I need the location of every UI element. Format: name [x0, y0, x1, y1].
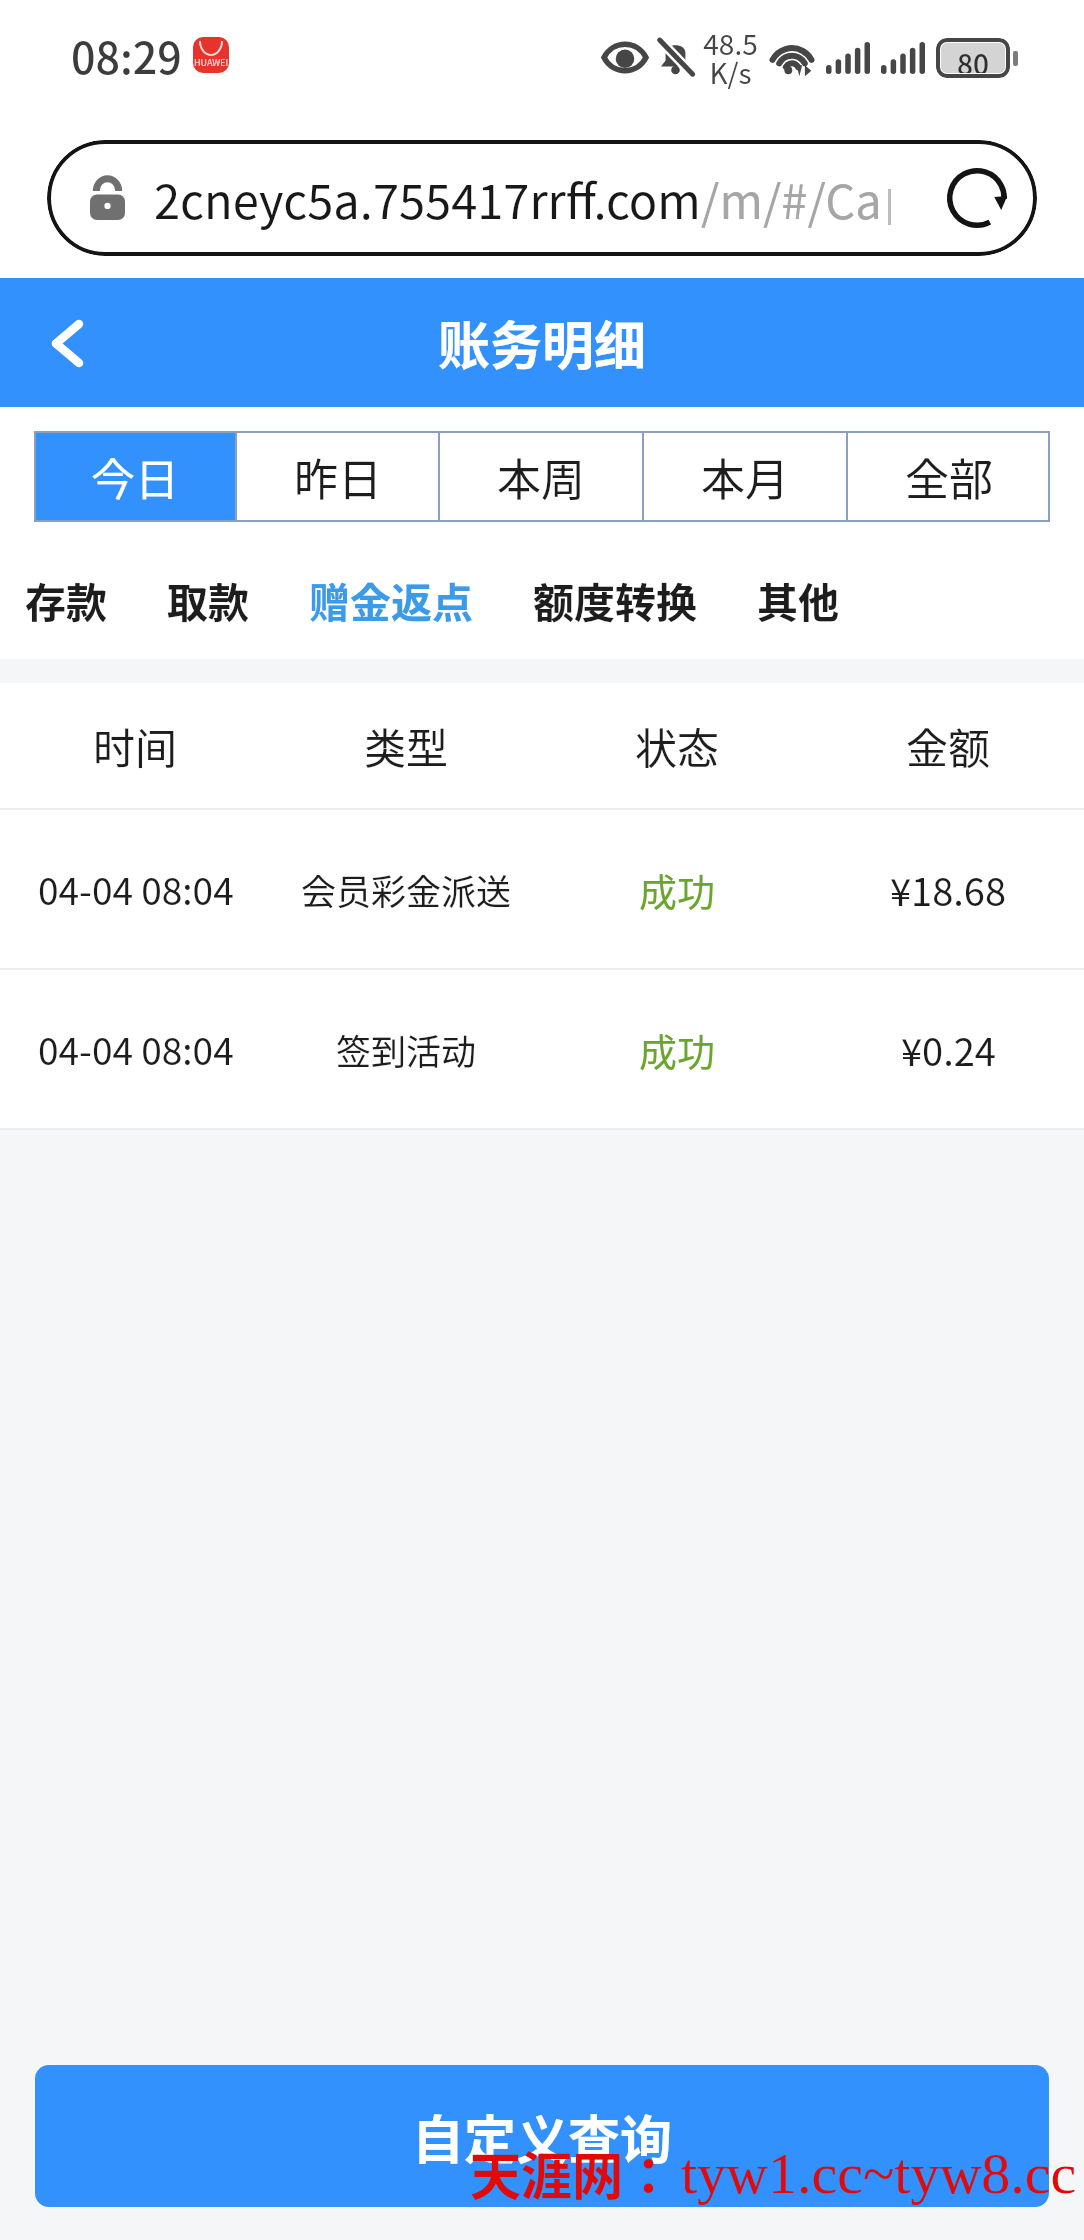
button[interactable]: 取款 [167, 570, 249, 629]
staticText: 账务明细 [438, 305, 647, 380]
staticText: 自定义查询 [412, 2099, 673, 2174]
staticText: 类型 [364, 715, 449, 776]
button[interactable]: 自定义查询 [35, 2065, 1049, 2207]
staticText: 取款 [167, 570, 249, 629]
button[interactable]: 2cneyc5a.755417rrff.com [47, 140, 1037, 256]
staticText: 时间 [93, 715, 178, 776]
staticText: HUAWEI [194, 56, 229, 69]
staticText: 赠金返点 [309, 570, 473, 629]
button[interactable]: 额度转换 [533, 570, 697, 629]
button[interactable]: 今日 [34, 431, 235, 522]
staticText: 会员彩金派送 [301, 864, 512, 915]
staticText: 天涯网： [470, 2136, 675, 2210]
button[interactable]: 全部 [848, 431, 1050, 522]
staticText: 额度转换 [533, 570, 697, 629]
staticText: ¥18.68 [890, 862, 1007, 917]
staticText: 48.5 K/s [703, 23, 758, 92]
staticText: 全部 [905, 445, 993, 509]
staticText: 80 [957, 43, 989, 73]
staticText: 04-04 08:04 [38, 1022, 234, 1076]
staticText: 2cneyc5a.755417rrff.com [154, 164, 701, 232]
staticText: 08:29 [71, 24, 182, 86]
button[interactable]: 昨日 [237, 431, 438, 522]
staticText: 本周 [497, 445, 585, 509]
staticText: 成功 [639, 862, 716, 917]
button[interactable]: 赠金返点 [309, 570, 473, 629]
button[interactable]: 其他 [757, 570, 839, 629]
button[interactable]: 存款 [25, 570, 107, 629]
staticText: 签到活动 [336, 1024, 477, 1075]
staticText: 04-04 08:04 [38, 862, 234, 916]
staticText: 其他 [757, 570, 839, 629]
staticText: tyw1.cc~tyw8.cc [681, 2141, 1077, 2205]
button[interactable]: 本周 [440, 431, 642, 522]
staticText: /m/#/Ca [701, 164, 882, 232]
staticText: 昨日 [294, 445, 382, 509]
button[interactable]: 04-04 08:04 [0, 810, 1084, 968]
staticText: 今日 [91, 445, 179, 509]
button[interactable]: Refresh [939, 160, 1015, 236]
staticText: 金额 [906, 715, 991, 776]
staticText: 本月 [701, 445, 789, 509]
button[interactable]: 04-04 08:04 [0, 970, 1084, 1128]
staticText: 成功 [639, 1022, 716, 1077]
staticText: 状态 [635, 715, 720, 776]
staticText: ¥0.24 [901, 1022, 996, 1077]
button[interactable]: Back [28, 304, 106, 382]
button[interactable]: 本月 [644, 431, 846, 522]
staticText: 存款 [25, 570, 107, 629]
